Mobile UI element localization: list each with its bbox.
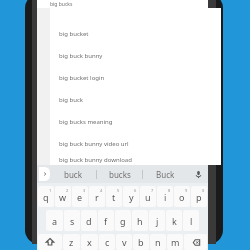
staticText: a [52,215,58,227]
button[interactable]: x [81,234,98,250]
staticText: 6 [134,188,137,193]
button[interactable]: Buck [143,165,188,183]
button[interactable]: y [123,186,139,207]
staticText: t [112,191,116,203]
staticText: 4 [100,188,103,193]
staticText: h [137,215,143,227]
button[interactable]: c [99,234,115,250]
staticText: q [43,191,49,203]
staticText: 2 [66,188,69,193]
staticText: big bucket [59,30,89,38]
staticText: big bucks [50,1,73,8]
staticText: l [190,215,193,227]
button[interactable]: q [38,186,54,207]
staticText: Buck [156,169,175,180]
staticText: big bucks meaning [59,118,113,126]
button[interactable]: h [132,210,148,231]
button[interactable]: Backspace [184,234,207,250]
button[interactable]: o [174,186,190,207]
staticText: o [179,191,185,203]
staticText: r [95,191,99,203]
staticText: x [87,236,92,248]
button[interactable]: big buck bunny video url [50,133,221,155]
staticText: z [69,236,74,248]
staticText: g [120,215,126,227]
button[interactable]: z [63,234,80,250]
staticText: f [104,215,108,227]
button[interactable]: Shift [38,234,62,250]
button[interactable]: b [133,234,149,250]
button[interactable]: big bucks meaning [50,111,221,133]
button[interactable]: big buck [50,89,221,111]
staticText: 8 [168,188,171,193]
staticText: k [172,215,177,227]
staticText: s [70,215,75,227]
button[interactable]: bucks [97,165,142,183]
button[interactable]: a [46,210,63,231]
button[interactable]: n [150,234,166,250]
button[interactable]: r [89,186,105,207]
button[interactable]: big buck bunny [50,45,221,67]
staticText: c [105,236,110,248]
staticText: e [77,191,83,203]
button[interactable]: v [116,234,132,250]
staticText: m [171,236,180,248]
button[interactable]: buck [50,165,96,183]
staticText: big bucket login [59,74,105,82]
button[interactable]: big buck bunny download [50,155,221,165]
button[interactable]: d [81,210,97,231]
staticText: y [129,191,134,203]
staticText: w [59,191,67,203]
button[interactable]: Expand suggestions [39,167,50,181]
button[interactable]: big bucks [37,0,208,8]
button[interactable]: f [98,210,114,231]
button[interactable]: l [183,210,199,231]
staticText: u [145,191,151,203]
staticText: big buck bunny video url [59,140,129,148]
staticText: bucks [109,169,131,180]
button[interactable]: e [72,186,88,207]
staticText: 7 [151,188,154,193]
staticText: v [122,236,127,248]
button[interactable]: j [149,210,165,231]
staticText: n [155,236,161,248]
staticText: 5 [117,188,120,193]
button[interactable]: g [115,210,131,231]
button[interactable]: p [191,186,207,207]
staticText: buck [64,169,82,180]
staticText: big buck bunny download [59,156,132,164]
button[interactable]: big bucket [50,23,221,45]
staticText: b [138,236,144,248]
button[interactable]: m [167,234,183,250]
staticText: 3 [83,188,86,193]
staticText: i [164,191,167,203]
staticText: 0 [202,188,205,193]
staticText: j [156,215,159,227]
button[interactable]: big bucket login [50,67,221,89]
button[interactable]: t [106,186,122,207]
staticText: 1 [49,188,52,193]
button[interactable]: s [64,210,80,231]
button[interactable]: Voice input [188,165,208,183]
staticText: big buck [59,96,83,104]
staticText: big buck bunny [59,52,103,60]
staticText: p [196,191,202,203]
staticText: 9 [185,188,188,193]
button[interactable]: w [55,186,71,207]
button[interactable]: i [157,186,173,207]
button[interactable]: u [140,186,156,207]
button[interactable]: k [166,210,182,231]
staticText: d [86,215,92,227]
